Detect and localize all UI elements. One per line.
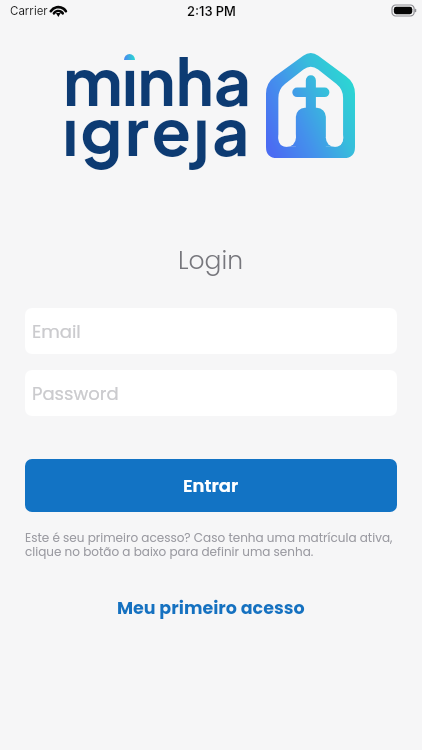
button[interactable]: Meu primeiro acesso — [103, 590, 319, 627]
staticText: Entrar — [183, 473, 239, 498]
staticText: Login — [178, 243, 244, 278]
button[interactable]: Email — [25, 308, 397, 354]
staticText: Meu primeiro acesso — [117, 596, 305, 621]
button[interactable]: Entrar — [25, 459, 397, 512]
staticText: Email — [32, 319, 81, 344]
staticText: ıgreȷa — [63, 89, 253, 170]
staticText: 2:13 PM — [187, 4, 236, 19]
staticText: Este é seu primeiro acesso? Caso tenha u… — [25, 529, 393, 560]
staticText: Password — [32, 381, 119, 406]
other: Minha Igreja logo — [266, 53, 355, 158]
staticText: mınha — [63, 39, 252, 120]
staticText: Carrier — [10, 4, 48, 18]
button[interactable]: Password — [25, 370, 397, 416]
